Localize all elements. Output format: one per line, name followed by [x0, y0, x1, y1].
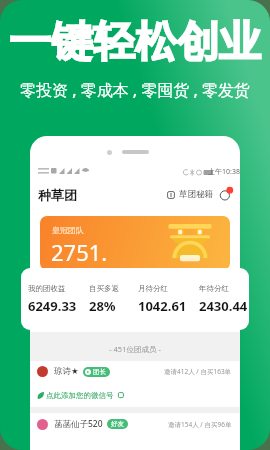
staticText: 好友	[111, 420, 124, 428]
staticText: 邀请412人 / 自买163单	[164, 367, 232, 376]
staticText: 邀请154人 / 自买96单	[168, 420, 232, 429]
button[interactable]: 草团秘籍	[167, 189, 213, 200]
staticText: 琼诗★	[54, 366, 79, 377]
staticText: 团长	[93, 368, 106, 376]
staticText: 年待分红	[199, 284, 229, 293]
button[interactable]: 我的团收益	[28, 284, 77, 315]
staticText: - 451位团成员 -	[30, 344, 240, 354]
staticText: 点此添加您的微信号	[46, 391, 114, 400]
staticText: 1042.61	[138, 297, 187, 315]
staticText: 月待分红	[138, 284, 168, 293]
staticText: 菡菡仙子520	[54, 418, 103, 430]
button[interactable]: 月待分红	[138, 284, 187, 315]
staticText: 自买多返	[89, 284, 119, 293]
staticText: 皇冠团队	[52, 225, 84, 235]
button[interactable]: 点此添加您的微信号	[37, 391, 124, 400]
staticText: 草团秘籍	[179, 189, 213, 200]
staticText: 上午10:38	[208, 167, 240, 177]
button[interactable]: 菡菡仙子520	[30, 418, 240, 430]
button[interactable]: 年待分红	[199, 284, 248, 315]
button[interactable]: 琼诗★	[30, 366, 240, 377]
staticText: 种草团	[38, 187, 77, 203]
staticText: 2751.	[51, 237, 108, 267]
button[interactable]: Messages	[219, 187, 233, 201]
staticText: 28%	[89, 297, 116, 315]
button[interactable]: 自买多返	[89, 284, 119, 315]
staticText: 我的团收益	[28, 284, 66, 293]
staticText: 零投资 , 零成本 , 零囤货 , 零发货	[20, 79, 251, 101]
staticText: 2430.44	[199, 297, 248, 315]
staticText: 一键轻松创业	[9, 16, 261, 69]
staticText: 6249.33	[28, 297, 77, 315]
